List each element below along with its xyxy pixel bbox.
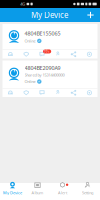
- button[interactable]: Device settings: [82, 50, 97, 58]
- button[interactable]: Messages: [34, 50, 50, 58]
- button[interactable]: Album: [25, 183, 50, 200]
- button[interactable]: Messages: [34, 88, 50, 97]
- button[interactable]: My Device: [0, 183, 25, 200]
- staticText: 4G: [20, 1, 25, 7]
- staticText: My Device: [3, 190, 22, 195]
- staticText: Shared by 15314400000: [24, 72, 64, 78]
- button[interactable]: Device settings: [82, 88, 97, 97]
- button[interactable]: Privacy: [18, 88, 34, 97]
- staticText: My Device: [31, 10, 69, 20]
- button[interactable]: Share: [66, 50, 82, 58]
- button[interactable]: 4804BE155065: [2, 24, 97, 58]
- button[interactable]: Privacy: [18, 50, 34, 58]
- button[interactable]: Setting: [75, 183, 100, 200]
- staticText: 4804BE2090A9: [24, 64, 60, 71]
- button[interactable]: Share users: [50, 88, 66, 97]
- staticText: 4804BE155065: [24, 30, 60, 37]
- button[interactable]: Playback: [3, 88, 18, 97]
- staticText: 99+: [44, 50, 50, 53]
- staticText: Alert: [58, 190, 67, 195]
- button[interactable]: Share: [66, 88, 82, 97]
- button[interactable]: Playback: [3, 50, 18, 58]
- button[interactable]: Alert: [50, 183, 75, 200]
- staticText: Online: [24, 79, 35, 84]
- button[interactable]: Share users: [50, 50, 66, 58]
- staticText: Setting: [82, 190, 93, 195]
- staticText: Album: [31, 190, 43, 195]
- button[interactable]: 4804BE2090A9: [2, 60, 97, 97]
- button[interactable]: Add device: [83, 8, 97, 22]
- staticText: Online: [24, 38, 35, 43]
